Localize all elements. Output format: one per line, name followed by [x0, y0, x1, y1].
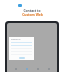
button[interactable]: App logo: [18, 4, 22, 7]
button[interactable]: Tab 2: [35, 66, 40, 71]
staticText: Contact to: [23, 8, 41, 12]
button[interactable]: Tab 1: [24, 66, 29, 71]
staticText: Custom Web: [22, 12, 43, 16]
button[interactable]: Tab 0: [13, 66, 18, 71]
staticText: Contact us: [11, 38, 21, 41]
button[interactable]: Tab 3: [46, 66, 51, 71]
button[interactable]: Send: [19, 57, 25, 59]
